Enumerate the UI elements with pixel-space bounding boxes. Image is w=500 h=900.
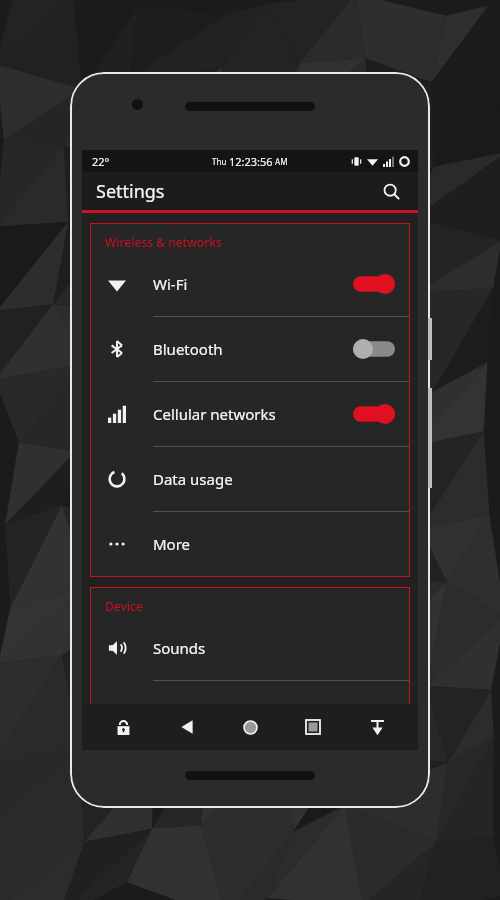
staticText: Wi-Fi	[153, 274, 188, 294]
button[interactable]: Wi-Fi	[91, 252, 409, 316]
button[interactable]: Data usage	[91, 447, 409, 511]
staticText: AM	[273, 156, 288, 167]
button[interactable]	[351, 403, 395, 425]
staticText: Thu	[212, 156, 229, 167]
button[interactable]: Lock	[101, 705, 145, 749]
button[interactable]: Sounds	[91, 616, 409, 680]
button[interactable]: Cellular networks	[91, 382, 409, 446]
staticText: Bluetooth	[153, 339, 223, 359]
staticText: Settings	[96, 179, 165, 204]
button[interactable]	[351, 273, 395, 295]
button[interactable]: More	[91, 512, 409, 576]
button[interactable]: Home	[228, 705, 272, 749]
staticText: More	[153, 534, 191, 554]
staticText: Sounds	[153, 638, 206, 658]
button[interactable]: Recents	[291, 705, 335, 749]
button[interactable]: Bluetooth	[91, 317, 409, 381]
staticText: Wireless & networks	[105, 234, 222, 250]
staticText: Data usage	[153, 469, 233, 489]
staticText: 22°	[92, 154, 110, 169]
button[interactable]: Back	[165, 705, 209, 749]
staticText: Device	[105, 598, 143, 614]
staticText: 12:23:56	[229, 154, 273, 169]
button[interactable]: Hide navigation bar	[355, 705, 399, 749]
button[interactable]: Search	[376, 176, 406, 206]
staticText: Cellular networks	[153, 404, 276, 424]
button[interactable]	[351, 338, 395, 360]
